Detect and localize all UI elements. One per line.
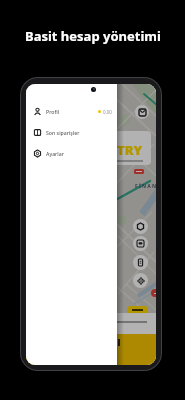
staticText: Basit hesap yönetimi [25, 27, 161, 45]
button[interactable] [133, 219, 148, 234]
button[interactable] [133, 273, 148, 288]
staticText: Profil [46, 108, 60, 115]
button[interactable] [133, 255, 148, 270]
staticText: TRY [117, 141, 143, 159]
button[interactable]: Son siparişler [26, 122, 117, 143]
staticText: Ayarlar [46, 150, 64, 157]
staticText: 0.00 [103, 109, 112, 115]
staticText: Son siparişler [46, 129, 80, 136]
button[interactable] [135, 105, 149, 119]
button[interactable]: Profil [26, 101, 117, 122]
button[interactable] [127, 306, 148, 314]
button[interactable] [26, 334, 156, 365]
button[interactable]: Ayarlar [26, 143, 117, 164]
button[interactable] [133, 236, 148, 251]
staticText: FİNAN [135, 183, 156, 190]
button[interactable]: TRY [46, 131, 151, 165]
